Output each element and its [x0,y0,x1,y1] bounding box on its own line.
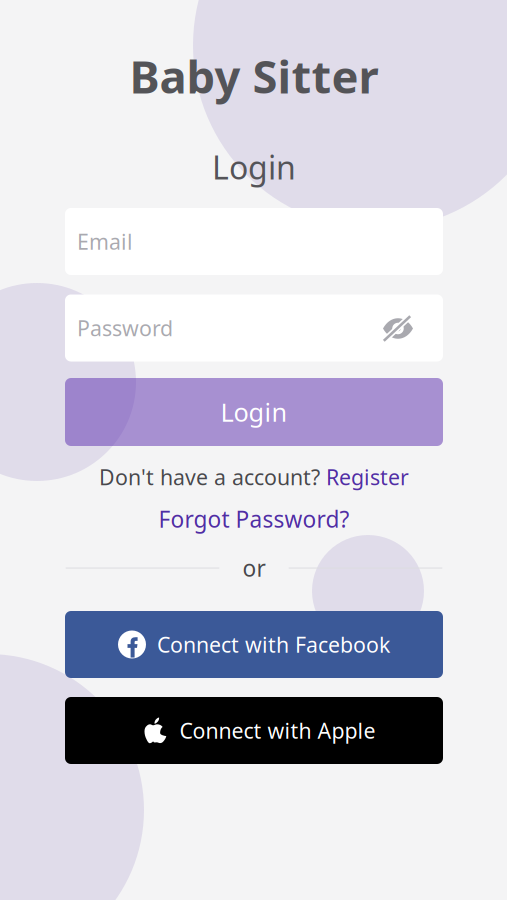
staticText: Forgot Password? [158,504,349,534]
button[interactable]: Connect with Apple [65,697,443,764]
button[interactable]: Connect with Facebook [65,611,443,678]
staticText: Login [220,395,287,429]
staticText: Login [212,146,296,188]
staticText: Connect with Facebook [157,630,390,659]
button[interactable]: Register [326,463,409,491]
staticText: Email [77,227,133,256]
staticText: Baby Sitter [129,46,378,106]
staticText: or [242,553,265,583]
staticText: Don't have a account? [99,463,326,491]
button[interactable]: Password [65,294,443,361]
staticText: Password [77,314,173,342]
staticText: Connect with Apple [179,716,375,745]
button[interactable]: Show password [373,307,423,350]
button[interactable]: Email [65,208,443,275]
button[interactable]: Login [65,378,443,446]
staticText: Register [326,463,409,491]
button[interactable]: Forgot Password? [158,504,349,534]
